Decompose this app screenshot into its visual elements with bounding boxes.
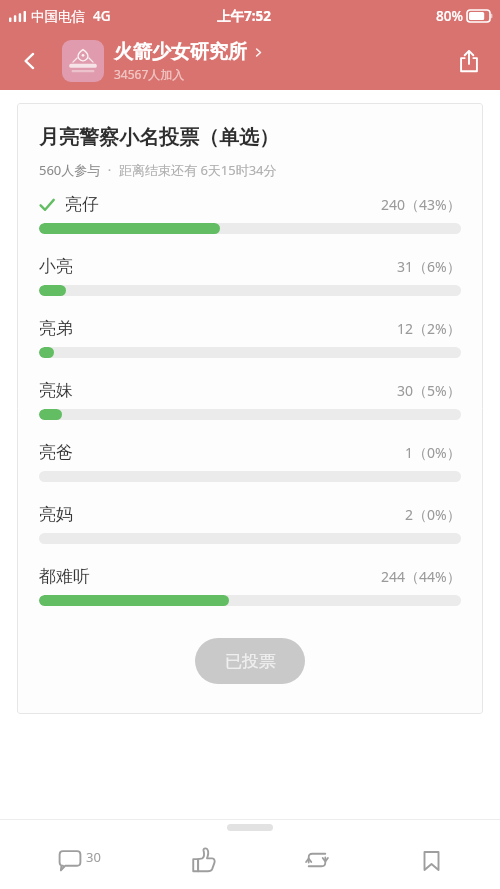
button[interactable]: 亮妈 <box>39 504 461 544</box>
button[interactable]: 火箭少女研究所 <box>62 40 264 82</box>
staticText: 560人参与 <box>39 161 101 179</box>
button[interactable]: 都难听 <box>39 566 461 606</box>
staticText: 中国电信 <box>31 8 85 25</box>
button[interactable]: 小亮 <box>39 256 461 296</box>
staticText: 已投票 <box>225 651 276 672</box>
button[interactable]: 亮爸 <box>39 442 461 482</box>
button[interactable]: Comments <box>24 831 134 889</box>
staticText: 240（43%） <box>381 195 461 214</box>
button[interactable]: Bookmark <box>386 831 476 889</box>
staticText: 1（0%） <box>405 443 461 462</box>
staticText: 12（2%） <box>397 319 461 338</box>
staticText: 亮妹 <box>39 380 73 401</box>
button[interactable]: 亮弟 <box>39 318 461 358</box>
staticText: 30（5%） <box>397 381 461 400</box>
button[interactable]: 亮妹 <box>39 380 461 420</box>
button[interactable]: 已投票 <box>195 638 305 684</box>
staticText: 上午7:52 <box>217 7 271 25</box>
staticText: 距离结束还有 6天15时34分 <box>119 161 277 179</box>
staticText: 火箭少女研究所 <box>114 40 247 64</box>
button[interactable]: 亮仔 <box>39 194 461 234</box>
staticText: 31（6%） <box>397 257 461 276</box>
staticText: 月亮警察小名投票（单选） <box>39 125 279 150</box>
staticText: 30 <box>86 848 101 866</box>
staticText: · <box>101 161 119 179</box>
button[interactable]: Like <box>158 831 248 889</box>
staticText: 亮弟 <box>39 318 73 339</box>
button[interactable]: Repost <box>272 831 362 889</box>
staticText: 80% <box>436 7 463 25</box>
staticText: 都难听 <box>39 566 90 587</box>
staticText: 亮仔 <box>65 194 99 215</box>
staticText: 4G <box>93 7 111 25</box>
staticText: 34567人加入 <box>114 66 185 82</box>
staticText: 2（0%） <box>405 505 461 524</box>
button[interactable]: Share <box>446 38 492 84</box>
staticText: 亮妈 <box>39 504 73 525</box>
staticText: 亮爸 <box>39 442 73 463</box>
staticText: 244（44%） <box>381 567 461 586</box>
button[interactable]: Back <box>6 37 54 85</box>
staticText: 小亮 <box>39 256 73 277</box>
